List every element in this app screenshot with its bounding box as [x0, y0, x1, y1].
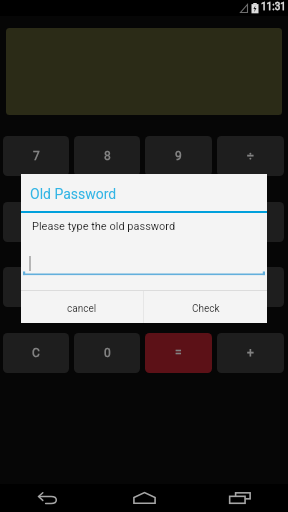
staticText: 2	[104, 280, 111, 294]
staticText: 11:31	[261, 1, 286, 13]
button[interactable]: +	[217, 333, 284, 373]
staticText: Check	[192, 303, 220, 315]
staticText: 4	[33, 215, 40, 229]
button[interactable]: =	[145, 333, 212, 373]
button[interactable]: 5	[74, 202, 140, 242]
staticText: 3	[175, 280, 182, 294]
button[interactable]: ×	[217, 202, 284, 242]
button[interactable]: 7	[3, 136, 69, 176]
staticText: +	[247, 346, 254, 360]
staticText: −	[247, 280, 254, 294]
staticText: Please type the old password	[32, 220, 176, 233]
staticText: ÷	[247, 149, 254, 163]
button[interactable]: Recent apps	[192, 484, 288, 512]
staticText: =	[175, 346, 182, 360]
staticText: cancel	[67, 303, 97, 315]
button[interactable]: 8	[74, 136, 140, 176]
button[interactable]: 1	[3, 267, 69, 307]
staticText: 1	[33, 280, 40, 294]
button[interactable]: C	[3, 333, 69, 373]
staticText: 0	[104, 346, 111, 360]
staticText: 7	[33, 149, 40, 163]
button[interactable]: Check	[144, 291, 267, 323]
button[interactable]: Home	[96, 484, 192, 512]
button[interactable]: 9	[145, 136, 212, 176]
staticText: C	[32, 346, 40, 360]
staticText: 8	[104, 149, 111, 163]
button[interactable]: 2	[74, 267, 140, 307]
button[interactable]: Back	[0, 484, 96, 512]
staticText: Old Password	[30, 186, 117, 202]
button[interactable]: ÷	[217, 136, 284, 176]
button[interactable]: cancel	[21, 291, 143, 323]
button[interactable]: 4	[3, 202, 69, 242]
staticText: 5	[104, 215, 111, 229]
button[interactable]: 6	[145, 202, 212, 242]
button[interactable]: 0	[74, 333, 140, 373]
button[interactable]: −	[217, 267, 284, 307]
button[interactable]: 3	[145, 267, 212, 307]
staticText: 9	[175, 149, 182, 163]
